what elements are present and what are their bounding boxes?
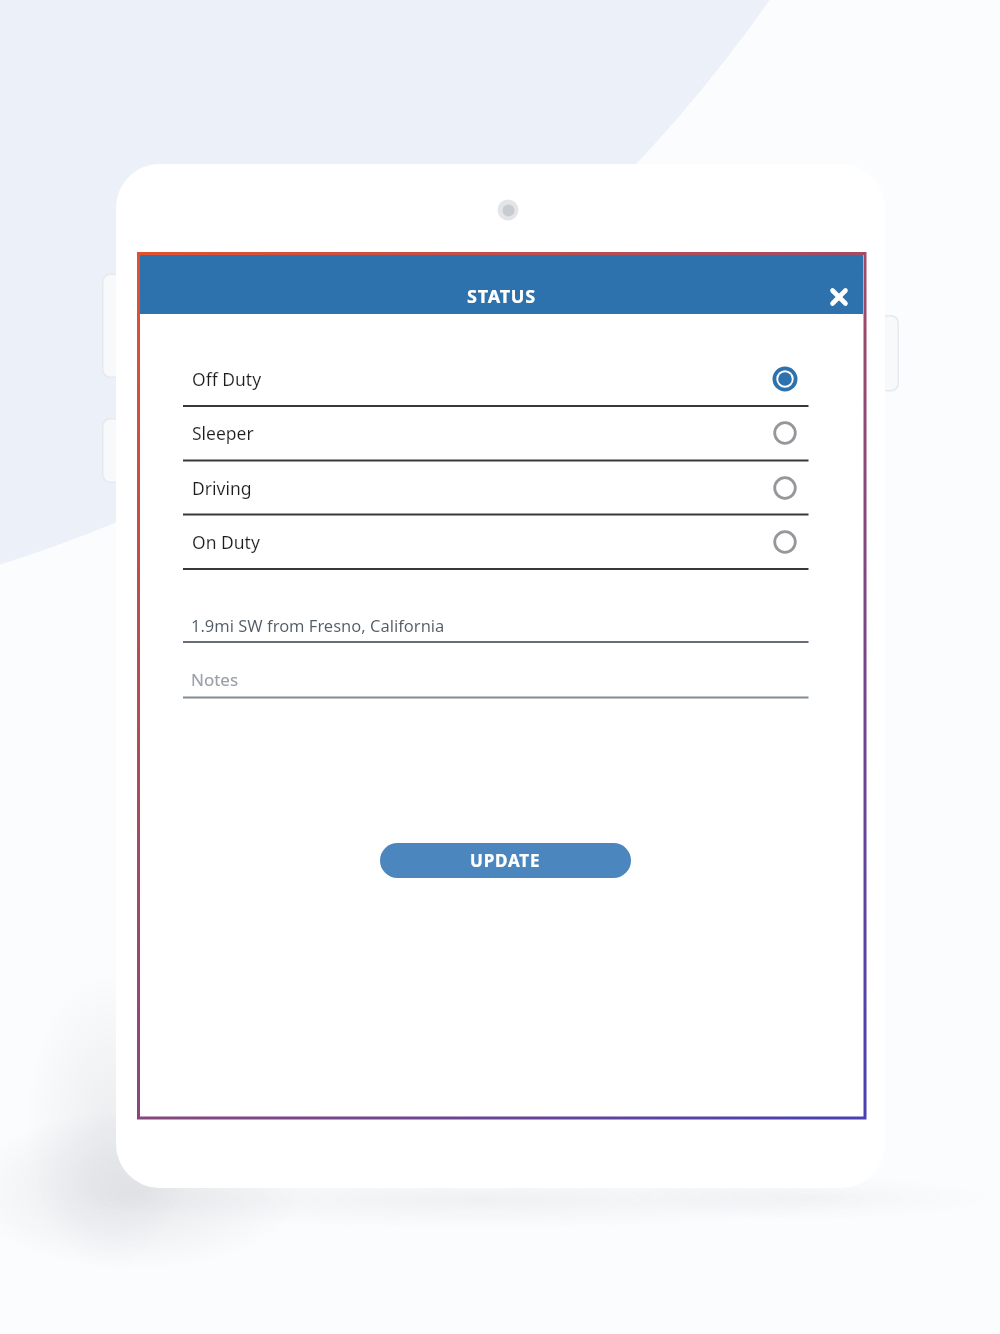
button[interactable]: Notes bbox=[183, 662, 808, 697]
button[interactable]: On Duty bbox=[140, 515, 863, 569]
staticText: STATUS bbox=[467, 284, 536, 309]
button[interactable]: Driving bbox=[140, 461, 863, 515]
button[interactable]: Sleeper bbox=[140, 406, 863, 460]
button[interactable]: 1.9mi SW from Fresno, California bbox=[183, 608, 808, 642]
staticText: Notes bbox=[191, 668, 239, 691]
button[interactable]: UPDATE bbox=[380, 843, 631, 878]
staticText: Off Duty bbox=[192, 367, 262, 391]
staticText: 1.9mi SW from Fresno, California bbox=[191, 614, 445, 636]
button[interactable]: Off Duty bbox=[140, 352, 863, 406]
staticText: On Duty bbox=[192, 530, 260, 554]
staticText: UPDATE bbox=[470, 849, 541, 872]
button[interactable] bbox=[820, 278, 857, 315]
staticText: Sleeper bbox=[192, 421, 254, 445]
staticText: Driving bbox=[192, 476, 252, 500]
